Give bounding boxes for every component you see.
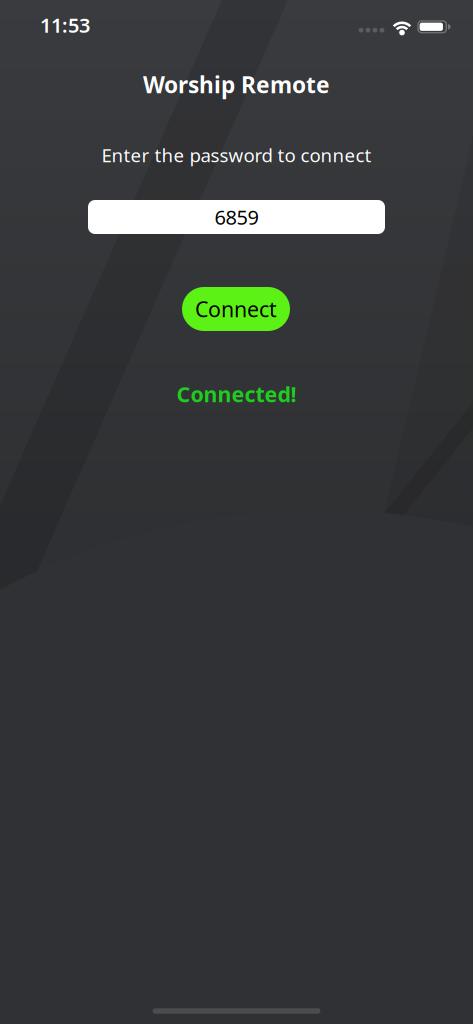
staticText: Worship Remote <box>143 69 330 99</box>
staticText: 6859 <box>214 204 258 230</box>
staticText: Connect <box>195 295 277 323</box>
button[interactable]: Connect <box>182 287 290 331</box>
staticText: 11:53 <box>40 12 90 38</box>
button[interactable]: Password <box>88 200 385 234</box>
staticText: Connected! <box>176 380 296 408</box>
staticText: Enter the password to connect <box>101 143 371 167</box>
